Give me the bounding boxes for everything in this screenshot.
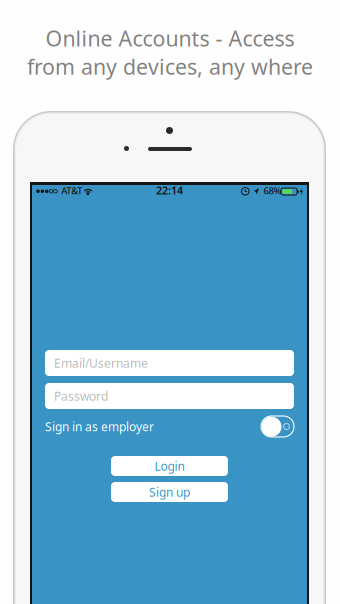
button[interactable]: Sign up xyxy=(111,482,228,502)
staticText: Email/Username xyxy=(54,355,148,371)
button[interactable]: Sign in as employer xyxy=(45,416,294,437)
staticText: AT&T xyxy=(61,184,82,197)
button[interactable]: Password xyxy=(45,383,294,409)
staticText: 68% xyxy=(263,184,281,197)
button[interactable]: Login xyxy=(111,456,228,476)
staticText: from any devices, any where xyxy=(27,52,313,81)
staticText: Online Accounts - Access xyxy=(45,24,294,52)
staticText: Login xyxy=(154,458,184,474)
staticText: 22:14 xyxy=(156,183,183,198)
staticText: Sign in as employer xyxy=(45,418,154,434)
staticText: Sign up xyxy=(149,484,190,500)
staticText: Password xyxy=(54,388,108,404)
button[interactable]: Email/Username xyxy=(45,350,294,376)
